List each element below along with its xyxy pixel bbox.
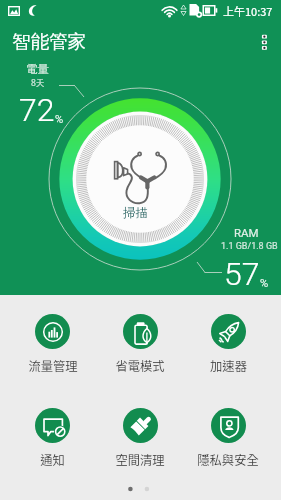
staticText: 通知 [40,451,65,469]
staticText: 空間清理 [115,451,165,469]
staticText: 加速器 [210,357,247,375]
staticText: 省電模式 [115,357,165,375]
staticText: 電量 [26,62,49,76]
staticText: 智能管家 [12,30,86,53]
button[interactable]: Scan [0,0,281,295]
button[interactable]: 省電模式 [96,314,184,375]
button[interactable]: 流量管理 [9,314,96,375]
button[interactable]: 通知 [9,408,96,469]
staticText: % [260,277,269,290]
staticText: 隱私與安全 [197,451,259,469]
staticText: 流量管理 [28,357,78,375]
button[interactable]: 加速器 [184,314,272,375]
staticText: 8天 [31,77,45,89]
staticText: 72 [19,91,55,129]
staticText: 1.1 GB/1.8 GB [221,241,278,252]
button[interactable]: More options [252,23,277,60]
staticText: 上午10:37 [223,3,273,19]
staticText: % [55,113,64,126]
staticText: RAM [234,226,259,239]
button[interactable]: 空間清理 [96,408,184,469]
staticText: 掃描 [123,205,148,221]
staticText: 57 [224,255,260,293]
button[interactable]: 隱私與安全 [184,408,272,469]
